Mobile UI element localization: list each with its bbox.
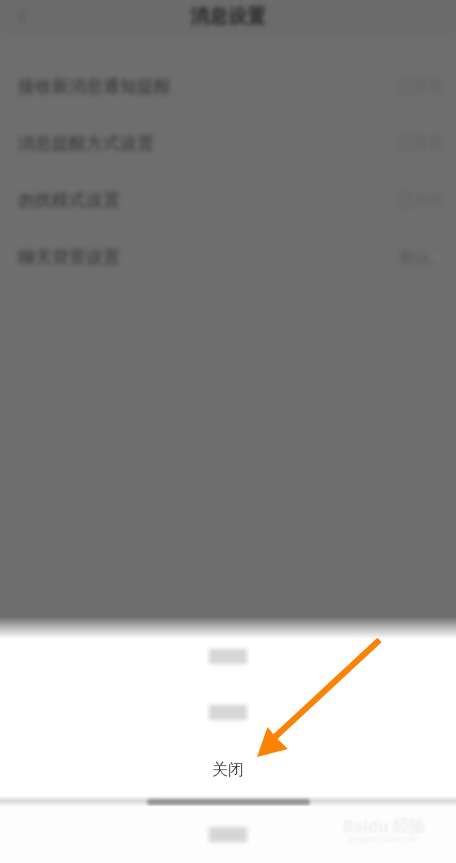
button[interactable]: 聊天背景设置 — [0, 229, 456, 286]
button[interactable]: 消息提醒方式设置 — [0, 115, 456, 172]
button[interactable]: 关闭 — [0, 751, 456, 789]
staticText: 关闭 — [212, 760, 244, 780]
staticText: 消息设置 — [190, 5, 266, 29]
button[interactable]: 接收新消息通知提醒 — [0, 58, 456, 115]
staticText: 接收新消息通知提醒 — [18, 76, 171, 97]
staticText: 勿扰模式设置 — [18, 190, 120, 211]
button[interactable]: 勿扰模式设置 — [0, 172, 456, 229]
staticText: 聊天背景设置 — [18, 247, 120, 268]
staticText: 消息提醒方式设置 — [18, 133, 154, 154]
staticText: Baidu 经验 — [343, 815, 425, 837]
